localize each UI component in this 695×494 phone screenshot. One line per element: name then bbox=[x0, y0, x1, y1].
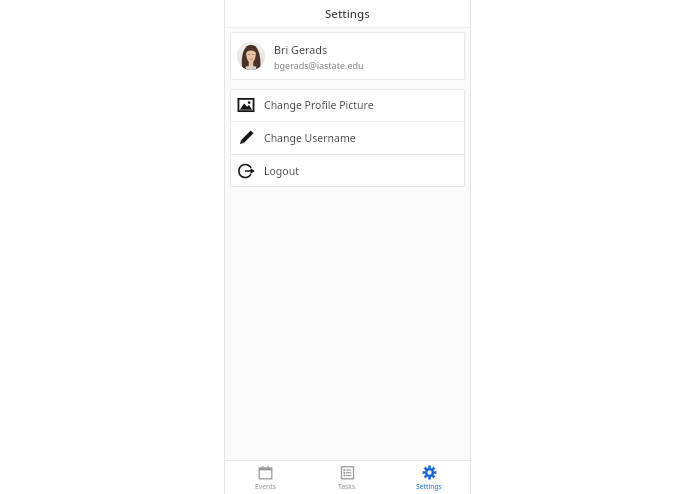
button[interactable]: Logout bbox=[230, 155, 465, 187]
staticText: Bri Gerads bbox=[274, 42, 328, 57]
staticText: Tasks bbox=[338, 482, 356, 491]
staticText: Settings bbox=[325, 6, 370, 22]
staticText: Settings bbox=[416, 482, 442, 491]
button[interactable]: Settings bbox=[388, 461, 470, 494]
staticText: Logout bbox=[264, 164, 299, 178]
staticText: Events bbox=[255, 482, 276, 491]
button[interactable]: Events bbox=[225, 461, 306, 494]
staticText: bgerads@iastate.edu bbox=[274, 59, 364, 71]
button[interactable]: Change Profile Picture bbox=[230, 89, 465, 121]
staticText: Change Username bbox=[264, 131, 356, 145]
staticText: Change Profile Picture bbox=[264, 98, 374, 112]
button[interactable]: Bri Gerads bbox=[230, 32, 465, 80]
button[interactable]: Tasks bbox=[306, 461, 388, 494]
button[interactable]: Change Username bbox=[230, 122, 465, 154]
